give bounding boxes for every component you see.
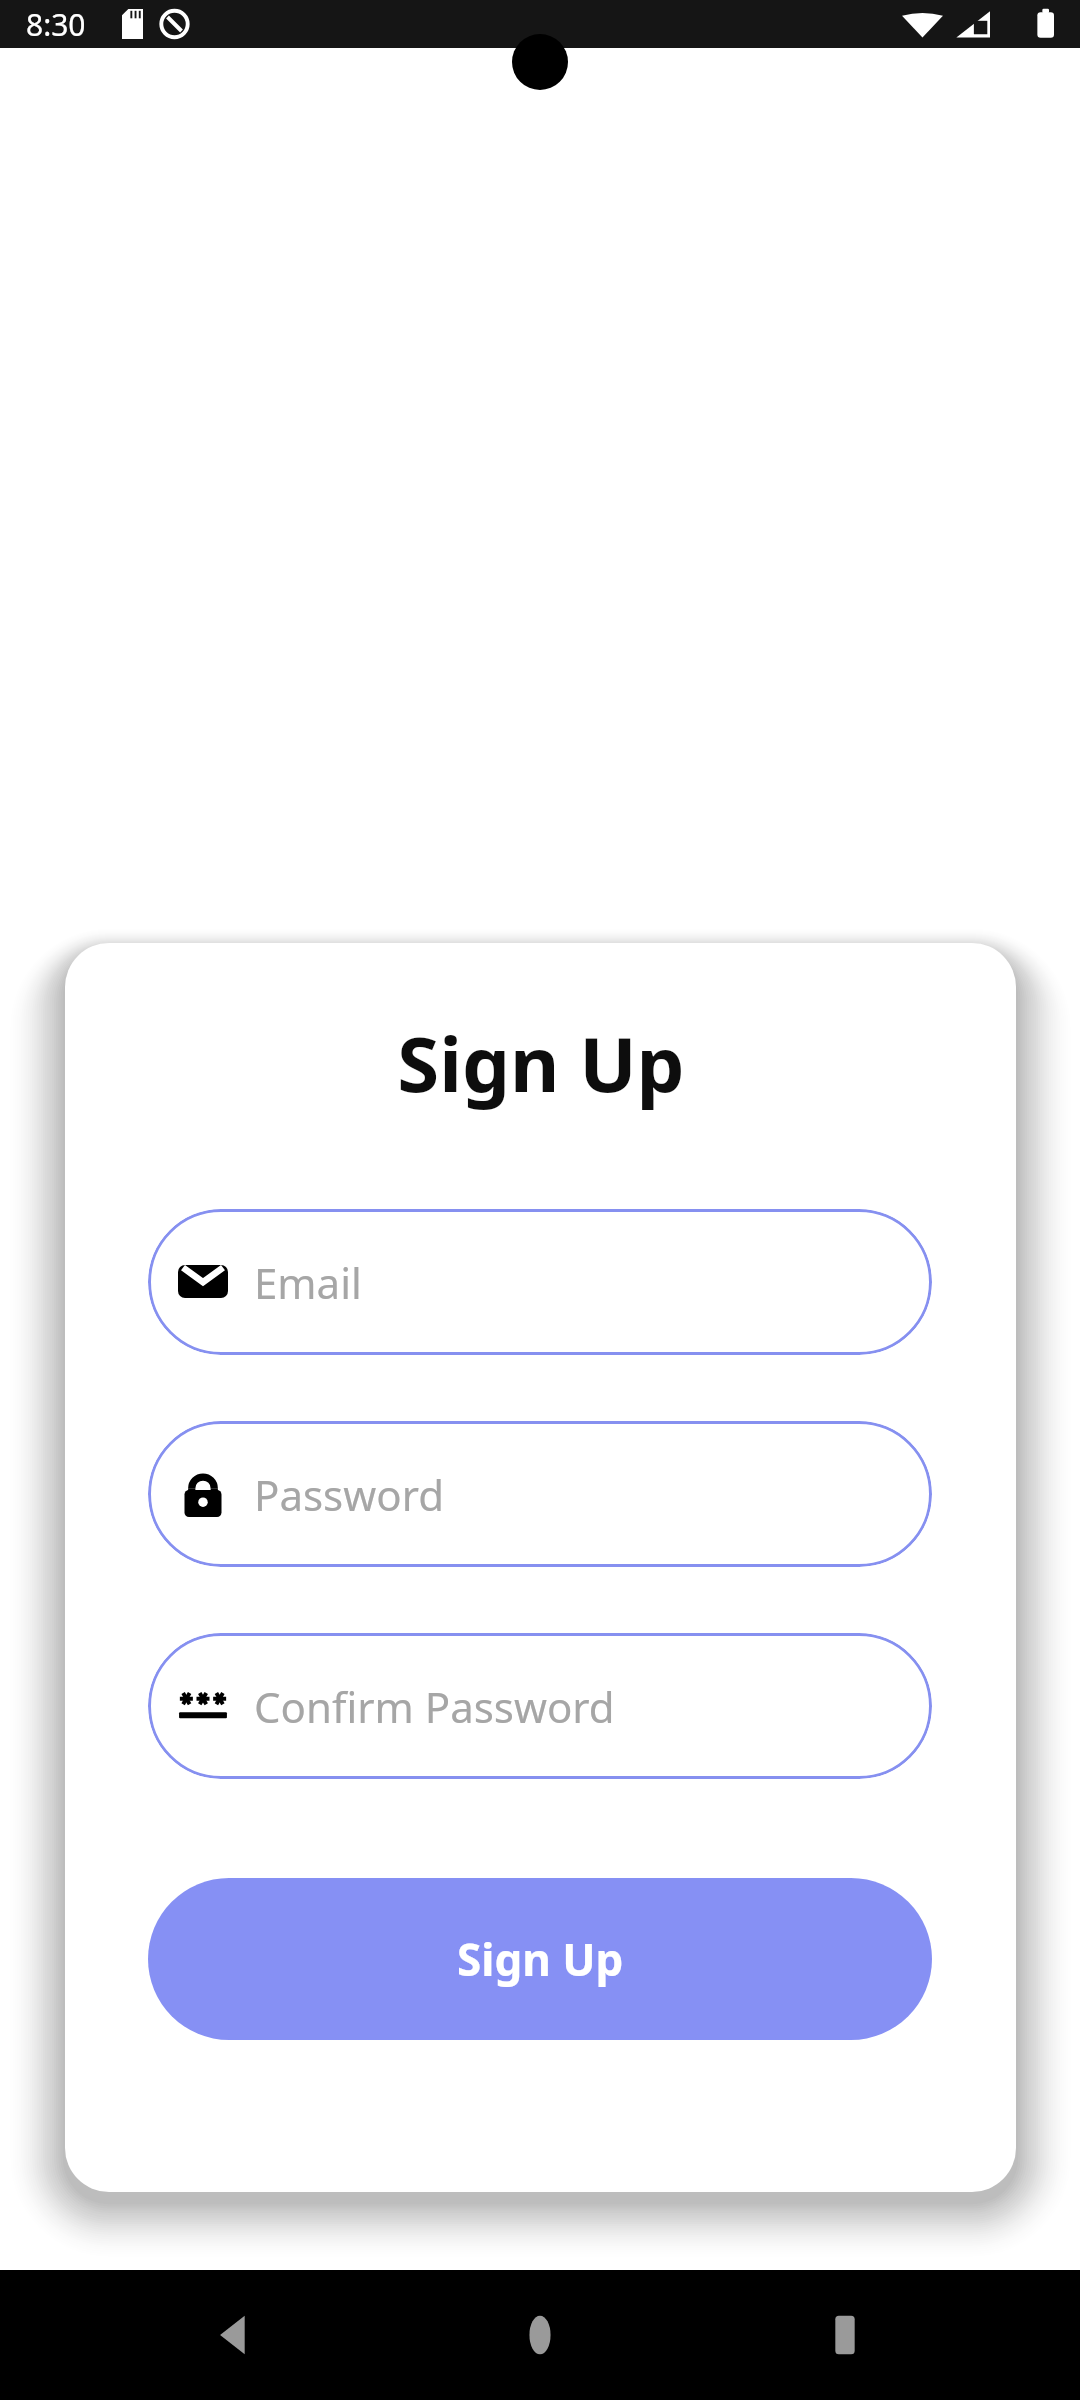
staticText: Confirm Password (254, 1678, 615, 1735)
staticText: 8:30 (26, 4, 86, 45)
button[interactable]: Recent apps (775, 2270, 915, 2400)
staticText: Email (254, 1254, 362, 1311)
button[interactable]: Password (148, 1421, 932, 1567)
button[interactable]: Sign Up (148, 1878, 932, 2040)
staticText: Sign Up (397, 1011, 685, 1115)
staticText: Sign Up (457, 1929, 624, 1989)
button[interactable]: Home (470, 2270, 610, 2400)
button[interactable]: Confirm Password (148, 1633, 932, 1779)
button[interactable]: Back (165, 2270, 305, 2400)
button[interactable]: Email (148, 1209, 932, 1355)
staticText: Password (254, 1466, 444, 1523)
